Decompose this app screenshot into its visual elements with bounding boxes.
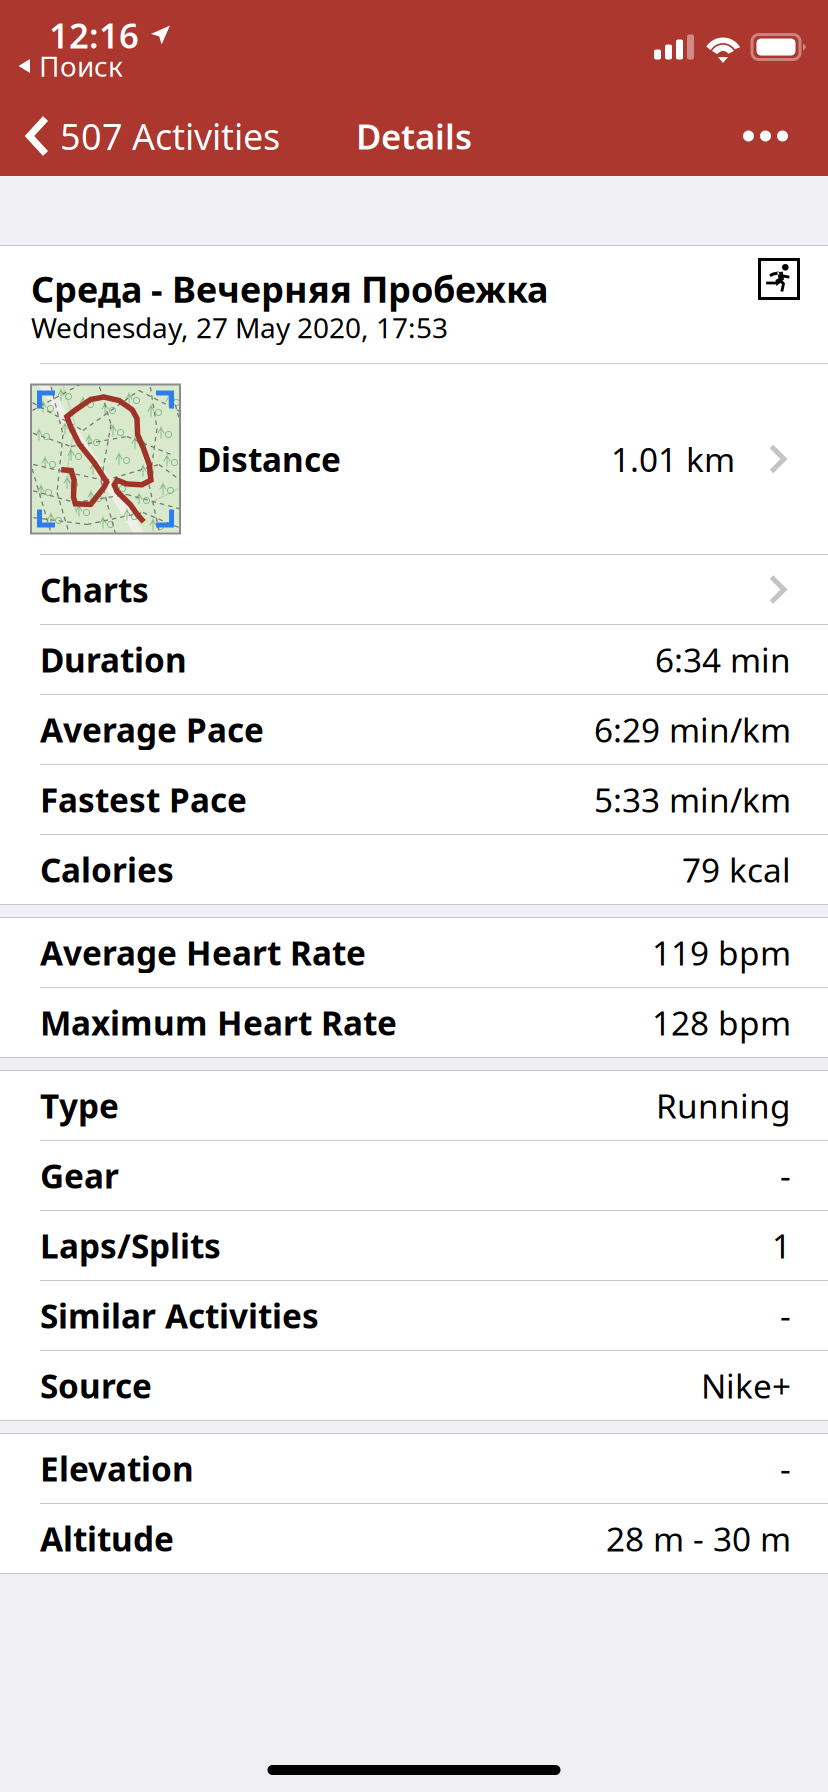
staticText: 119 bpm bbox=[652, 930, 791, 975]
button[interactable]: Distance bbox=[0, 364, 828, 554]
button[interactable]: Source bbox=[0, 1351, 828, 1420]
staticText: Similar Activities bbox=[40, 1293, 319, 1338]
button[interactable]: 507 Activities bbox=[0, 96, 296, 176]
staticText: 1 bbox=[772, 1223, 791, 1268]
staticText: Elevation bbox=[40, 1446, 194, 1491]
staticText: Duration bbox=[40, 637, 187, 682]
button[interactable]: Type bbox=[0, 1071, 828, 1140]
button[interactable]: Average Heart Rate bbox=[0, 918, 828, 987]
staticText: Source bbox=[40, 1363, 152, 1408]
button[interactable]: Similar Activities bbox=[0, 1281, 828, 1350]
button[interactable]: Altitude bbox=[0, 1504, 828, 1573]
staticText: 1.01 km bbox=[611, 437, 735, 481]
staticText: - bbox=[780, 1153, 791, 1198]
staticText: 507 Activities bbox=[60, 112, 280, 160]
staticText: Calories bbox=[40, 847, 174, 892]
staticText: Maximum Heart Rate bbox=[40, 1000, 397, 1045]
staticText: Average Pace bbox=[40, 707, 264, 752]
staticText: 12:16 bbox=[49, 12, 139, 58]
staticText: 5:33 min/km bbox=[594, 777, 791, 822]
button[interactable]: Calories bbox=[0, 835, 828, 904]
staticText: Running bbox=[656, 1083, 791, 1128]
button[interactable]: More options bbox=[717, 96, 828, 176]
staticText: 128 bpm bbox=[652, 1000, 791, 1045]
staticText: Details bbox=[356, 113, 472, 159]
staticText: 6:34 min bbox=[655, 637, 791, 682]
button[interactable]: Elevation bbox=[0, 1434, 828, 1503]
staticText: Среда - Вечерняя Пробежка bbox=[31, 265, 548, 313]
button[interactable]: Charts bbox=[0, 555, 828, 624]
staticText: Gear bbox=[40, 1153, 119, 1198]
button[interactable]: Поиск bbox=[18, 52, 123, 80]
staticText: 79 kcal bbox=[682, 847, 791, 892]
staticText: Distance bbox=[197, 437, 341, 481]
button[interactable]: Fastest Pace bbox=[0, 765, 828, 834]
button[interactable]: Laps/Splits bbox=[0, 1211, 828, 1280]
staticText: 6:29 min/km bbox=[594, 707, 791, 752]
staticText: Altitude bbox=[40, 1516, 174, 1561]
staticText: Поиск bbox=[39, 47, 123, 85]
staticText: Fastest Pace bbox=[40, 777, 247, 822]
staticText: - bbox=[780, 1293, 791, 1338]
button[interactable]: Average Pace bbox=[0, 695, 828, 764]
staticText: Average Heart Rate bbox=[40, 930, 366, 975]
staticText: Wednesday, 27 May 2020, 17:53 bbox=[31, 309, 448, 346]
staticText: 28 m - 30 m bbox=[606, 1516, 791, 1561]
staticText: - bbox=[780, 1446, 791, 1491]
button[interactable]: Gear bbox=[0, 1141, 828, 1210]
staticText: Nike+ bbox=[701, 1363, 791, 1408]
button[interactable]: Maximum Heart Rate bbox=[0, 988, 828, 1057]
staticText: Charts bbox=[40, 567, 149, 612]
button[interactable]: Duration bbox=[0, 625, 828, 694]
staticText: Type bbox=[40, 1083, 119, 1128]
staticText: Laps/Splits bbox=[40, 1223, 221, 1268]
